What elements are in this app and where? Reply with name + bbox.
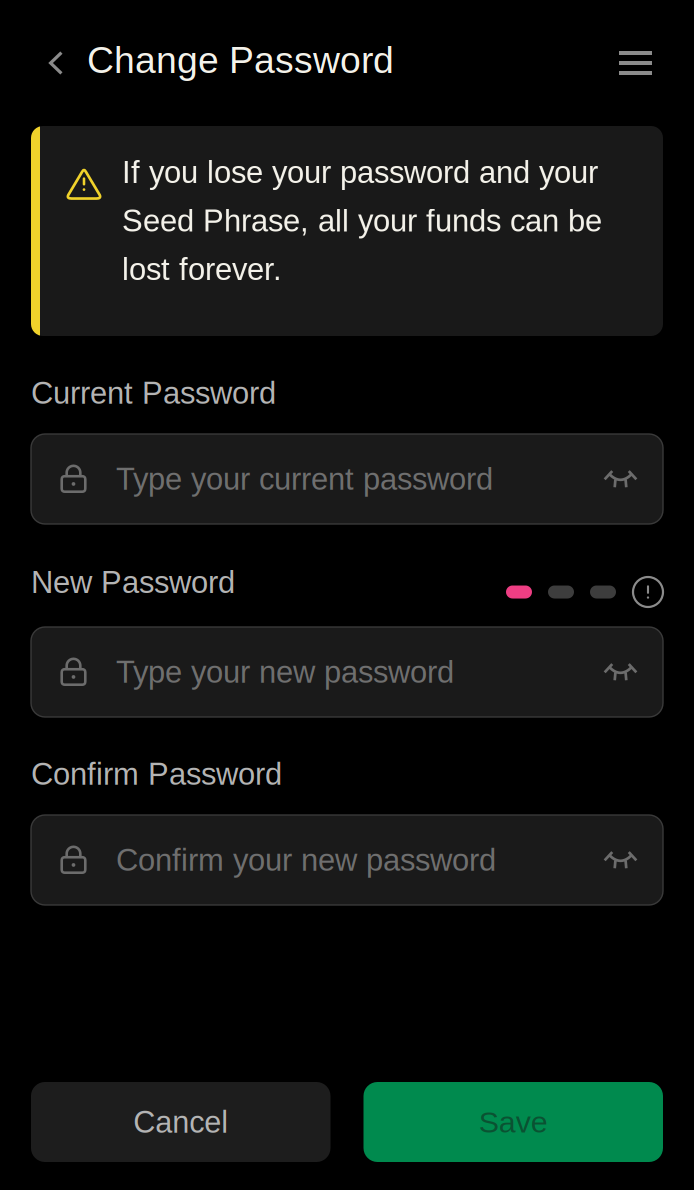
button[interactable]: Cancel [31, 1082, 330, 1162]
staticText: If you lose your password and your Seed … [122, 155, 602, 287]
staticText: New Password [31, 565, 235, 600]
staticText: Type your current password [116, 462, 493, 496]
staticText: Change Password [87, 39, 394, 81]
staticText: Current Password [31, 376, 276, 410]
button[interactable]: Menu [598, 29, 673, 97]
staticText: Type your new password [116, 655, 454, 689]
button[interactable]: Change Password [0, 23, 408, 103]
staticText: Confirm Password [31, 757, 282, 791]
staticText: Cancel [133, 1105, 228, 1139]
staticText: Save [479, 1105, 548, 1139]
staticText: Confirm your new password [116, 843, 496, 877]
button[interactable]: Save [363, 1082, 663, 1162]
button[interactable]: Type your current password [31, 434, 663, 524]
button[interactable]: Confirm your new password [31, 815, 663, 905]
button[interactable]: Type your new password [31, 627, 663, 717]
